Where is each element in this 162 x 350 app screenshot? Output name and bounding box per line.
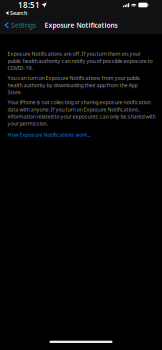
staticText: Settings	[11, 21, 36, 30]
staticText: COVID-19.	[7, 64, 32, 71]
staticText: How Exposure Notifications work...	[7, 131, 90, 138]
staticText: Exposure Notifications are off. If you t…	[7, 50, 140, 57]
button[interactable]: How Exposure Notifications work...	[7, 130, 90, 139]
button[interactable]: Settings	[0, 19, 36, 32]
staticText: Exposure Notifications	[44, 21, 117, 30]
staticText: You can turn on Exposure Notifications f…	[7, 74, 140, 81]
staticText: information related to your exposures ca…	[7, 113, 155, 120]
staticText: health authority by downloading their ap…	[7, 81, 137, 89]
staticText: Your iPhone is not collecting or sharing…	[7, 99, 150, 106]
staticText: public health authority can notify you o…	[7, 57, 152, 64]
staticText: Search	[10, 9, 27, 17]
staticText: 18:51	[18, 0, 40, 10]
staticText: your permission.	[7, 120, 47, 127]
staticText: data with anyone. If you turn on Exposur…	[7, 106, 139, 113]
staticText: Store.	[7, 89, 21, 96]
